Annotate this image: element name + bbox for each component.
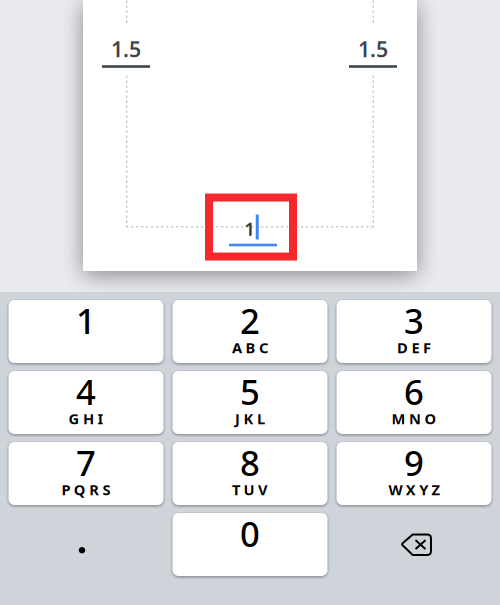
staticText: I xyxy=(97,409,103,428)
staticText: S xyxy=(103,480,111,499)
staticText: R xyxy=(89,480,99,499)
staticText: 4 xyxy=(76,368,96,414)
button[interactable]: 8 xyxy=(172,442,327,505)
staticText: Z xyxy=(432,480,440,499)
button[interactable]: 9 xyxy=(336,442,491,505)
button[interactable]: 2 xyxy=(172,300,327,363)
staticText: P xyxy=(61,480,70,499)
staticText: 9 xyxy=(404,439,424,485)
staticText: Y xyxy=(419,480,428,499)
staticText: 3 xyxy=(404,297,424,343)
button[interactable]: 1.5 xyxy=(98,25,154,73)
staticText: L xyxy=(257,409,265,428)
staticText: T xyxy=(232,480,240,499)
staticText: N xyxy=(409,409,421,428)
staticText: O xyxy=(424,409,436,428)
button[interactable]: 1 xyxy=(8,300,163,363)
staticText: K xyxy=(243,409,253,428)
staticText: J xyxy=(235,409,240,428)
button[interactable]: 7 xyxy=(8,442,163,505)
button[interactable]: 3 xyxy=(336,300,491,363)
staticText: B xyxy=(245,338,255,357)
staticText: 1 xyxy=(244,216,255,241)
staticText: F xyxy=(423,338,431,357)
staticText: 1 xyxy=(76,297,96,343)
staticText: C xyxy=(259,338,268,357)
button[interactable]: Delete xyxy=(336,513,491,576)
button[interactable]: 6 xyxy=(336,371,491,434)
staticText: V xyxy=(258,480,268,499)
staticText: M xyxy=(392,409,406,428)
button[interactable]: Decimal point xyxy=(8,513,163,576)
staticText: U xyxy=(243,480,254,499)
staticText: H xyxy=(83,409,94,428)
staticText: 7 xyxy=(76,439,96,485)
staticText: 1.5 xyxy=(111,35,141,63)
staticText: 6 xyxy=(404,368,424,414)
staticText: 0 xyxy=(240,510,260,556)
staticText: 8 xyxy=(240,439,260,485)
staticText: E xyxy=(411,338,419,357)
staticText: Q xyxy=(74,480,86,499)
staticText: G xyxy=(69,409,80,428)
button[interactable]: 1 xyxy=(205,193,297,260)
staticText: A xyxy=(232,338,242,357)
button[interactable]: 1.5 xyxy=(345,25,401,73)
staticText: 2 xyxy=(240,297,260,343)
staticText: D xyxy=(397,338,408,357)
button[interactable]: 0 xyxy=(172,513,327,576)
staticText: 1.5 xyxy=(358,35,388,63)
staticText: 5 xyxy=(240,368,260,414)
button[interactable]: 4 xyxy=(8,371,163,434)
staticText: W xyxy=(388,480,402,499)
staticText: X xyxy=(406,480,416,499)
button[interactable]: 5 xyxy=(172,371,327,434)
